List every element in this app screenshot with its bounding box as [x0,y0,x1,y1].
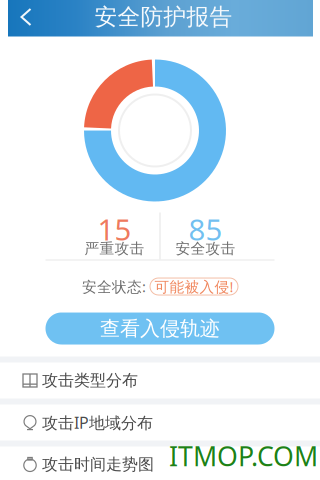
staticText: 查看入侵轨迹 [100,316,220,341]
staticText: 15 [97,209,131,248]
staticText: 安全防护报告 [94,3,232,31]
staticText: 可能被入侵! [154,277,233,296]
staticText: 严重攻击 [84,239,144,257]
staticText: 攻击IP地域分布 [42,412,153,433]
staticText: 安全状态: [82,277,146,296]
staticText: 85 [188,209,222,248]
button[interactable]: 攻击IP地域分布 [0,404,320,440]
staticText: 攻击类型分布 [42,371,138,390]
staticText: 安全攻击 [175,239,235,257]
staticText: 攻击时间走势图 [42,455,154,474]
button[interactable]: 攻击时间走势图 [0,446,320,480]
button[interactable]: 攻击类型分布 [0,362,320,398]
button[interactable]: 查看入侵轨迹 [45,312,274,344]
staticText: ITMOP.COM [169,438,318,474]
button[interactable]: Back [8,0,44,36]
